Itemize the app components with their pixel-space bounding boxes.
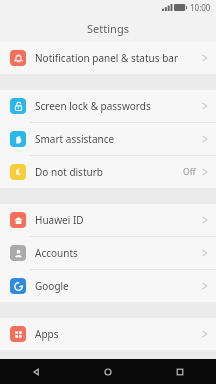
button[interactable]: Accounts <box>0 237 216 269</box>
staticText: Smart assistance <box>35 132 115 146</box>
button[interactable]: Home <box>72 359 144 384</box>
staticText: 10:00 <box>190 2 211 13</box>
staticText: Screen lock & passwords <box>35 99 151 113</box>
staticText: Accounts <box>35 246 78 260</box>
button[interactable]: Google <box>0 270 216 302</box>
staticText: Google <box>35 279 69 293</box>
staticText: Notification panel & status bar <box>35 51 179 65</box>
staticText: Do not disturb <box>35 165 103 179</box>
button[interactable]: Screen lock & passwords <box>0 90 216 122</box>
button[interactable]: Huawei ID <box>0 204 216 236</box>
staticText: Apps <box>35 327 59 341</box>
staticText: Huawei ID <box>35 213 84 227</box>
button[interactable]: Notification panel & status bar <box>0 42 216 74</box>
button[interactable]: Apps <box>0 318 216 350</box>
button[interactable]: Back <box>0 359 72 384</box>
staticText: Off <box>183 166 196 178</box>
button[interactable]: Do not disturb <box>0 156 216 188</box>
staticText: Settings <box>87 21 129 36</box>
button[interactable]: Recent apps <box>144 359 216 384</box>
button[interactable]: Smart assistance <box>0 123 216 155</box>
